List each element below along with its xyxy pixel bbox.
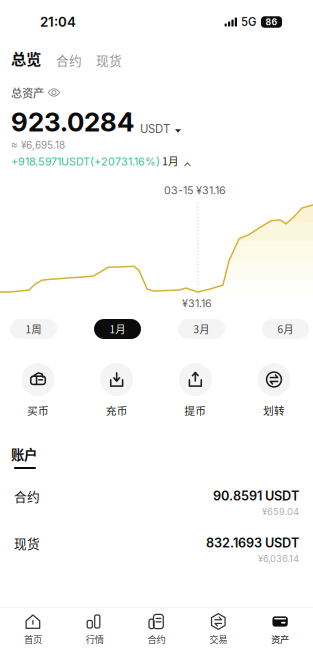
staticText: 1月 xyxy=(162,153,179,168)
button[interactable]: 充币 xyxy=(89,363,145,416)
staticText: ¥31.16 xyxy=(182,297,212,310)
staticText: 现货 xyxy=(96,51,122,69)
button[interactable]: 3月 xyxy=(178,319,225,339)
button[interactable]: 现货 xyxy=(0,534,313,565)
button[interactable]: 6月 xyxy=(262,319,309,339)
button[interactable]: 行情 xyxy=(64,613,126,645)
staticText: 合约 xyxy=(147,632,165,646)
staticText: 21:04 xyxy=(40,14,76,30)
staticText: 充币 xyxy=(106,402,128,418)
staticText: 行情 xyxy=(86,632,104,646)
button[interactable]: 买币 xyxy=(10,363,66,416)
staticText: 合约 xyxy=(56,51,82,69)
staticText: 1周 xyxy=(25,322,41,336)
button[interactable]: 资产 xyxy=(249,613,311,645)
staticText: 资产 xyxy=(271,632,289,646)
staticText: 6月 xyxy=(277,322,293,336)
staticText: 提币 xyxy=(184,402,206,418)
staticText: 923.0284 xyxy=(11,106,134,138)
staticText: ≈ ¥6,695.18 xyxy=(11,139,65,151)
button[interactable]: 合约 xyxy=(41,51,82,69)
staticText: USDT xyxy=(140,122,170,136)
button[interactable]: 划转 xyxy=(246,363,302,416)
button[interactable]: 1周 xyxy=(10,319,57,339)
staticText: 90.8591 USDT xyxy=(213,488,299,504)
staticText: 86 xyxy=(265,17,277,27)
staticText: 账户 xyxy=(11,444,37,464)
button[interactable]: 1月 xyxy=(94,319,141,339)
staticText: 1月 xyxy=(109,322,125,336)
staticText: 832.1693 USDT xyxy=(206,535,299,551)
staticText: 交易 xyxy=(209,632,227,646)
button[interactable]: 合约 xyxy=(0,487,313,518)
button[interactable]: 合约 xyxy=(126,613,187,645)
staticText: 合约 xyxy=(14,487,40,505)
staticText: 现货 xyxy=(14,534,40,552)
staticText: +918.5971USDT(+20731.16%) xyxy=(11,155,160,168)
staticText: 首页 xyxy=(24,632,42,646)
staticText: ¥6,036.14 xyxy=(258,553,299,564)
staticText: 总资产 xyxy=(11,84,44,101)
staticText: 买币 xyxy=(27,402,49,418)
button[interactable]: 首页 xyxy=(2,613,64,645)
button[interactable]: 交易 xyxy=(187,613,249,645)
staticText: 划转 xyxy=(263,402,285,418)
button[interactable]: 现货 xyxy=(82,51,122,69)
staticText: ¥659.04 xyxy=(262,506,299,517)
button[interactable]: 提币 xyxy=(167,363,223,416)
staticText: 总览 xyxy=(11,47,41,69)
staticText: 5G xyxy=(241,15,256,29)
staticText: 03-15 ¥31.16 xyxy=(164,184,226,197)
staticText: 3月 xyxy=(193,322,209,336)
button[interactable]: 总览 xyxy=(11,47,41,69)
